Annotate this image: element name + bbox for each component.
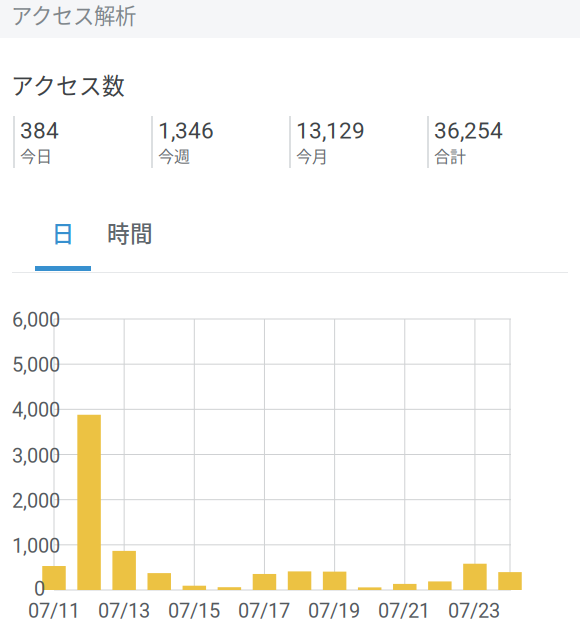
staticText: 合計 (434, 144, 466, 167)
staticText: 今月 (296, 144, 328, 167)
staticText: 1,000 (12, 534, 60, 558)
staticText: 5,000 (12, 353, 60, 377)
staticText: 36,254 (434, 117, 503, 144)
staticText: 384 (20, 117, 59, 144)
staticText: アクセス解析 (11, 0, 136, 30)
staticText: 今日 (20, 144, 52, 167)
staticText: 時間 (107, 216, 153, 248)
staticText: 0 (34, 577, 45, 601)
staticText: 1,346 (158, 117, 214, 144)
staticText: アクセス数 (11, 68, 125, 101)
staticText: 07/23 (448, 599, 500, 623)
staticText: 日 (51, 216, 74, 248)
staticText: 13,129 (296, 117, 365, 144)
button[interactable]: 時間 (98, 201, 162, 263)
staticText: 4,000 (12, 398, 60, 422)
staticText: 3,000 (12, 444, 60, 468)
staticText: 6,000 (12, 308, 60, 332)
staticText: 07/19 (308, 599, 360, 623)
staticText: 07/11 (28, 599, 80, 623)
staticText: 2,000 (12, 489, 60, 513)
staticText: 今週 (158, 144, 190, 167)
staticText: 07/13 (98, 599, 150, 623)
staticText: 07/17 (238, 599, 290, 623)
staticText: 07/21 (378, 599, 430, 623)
staticText: 07/15 (168, 599, 220, 623)
button[interactable]: 日 (35, 201, 91, 263)
